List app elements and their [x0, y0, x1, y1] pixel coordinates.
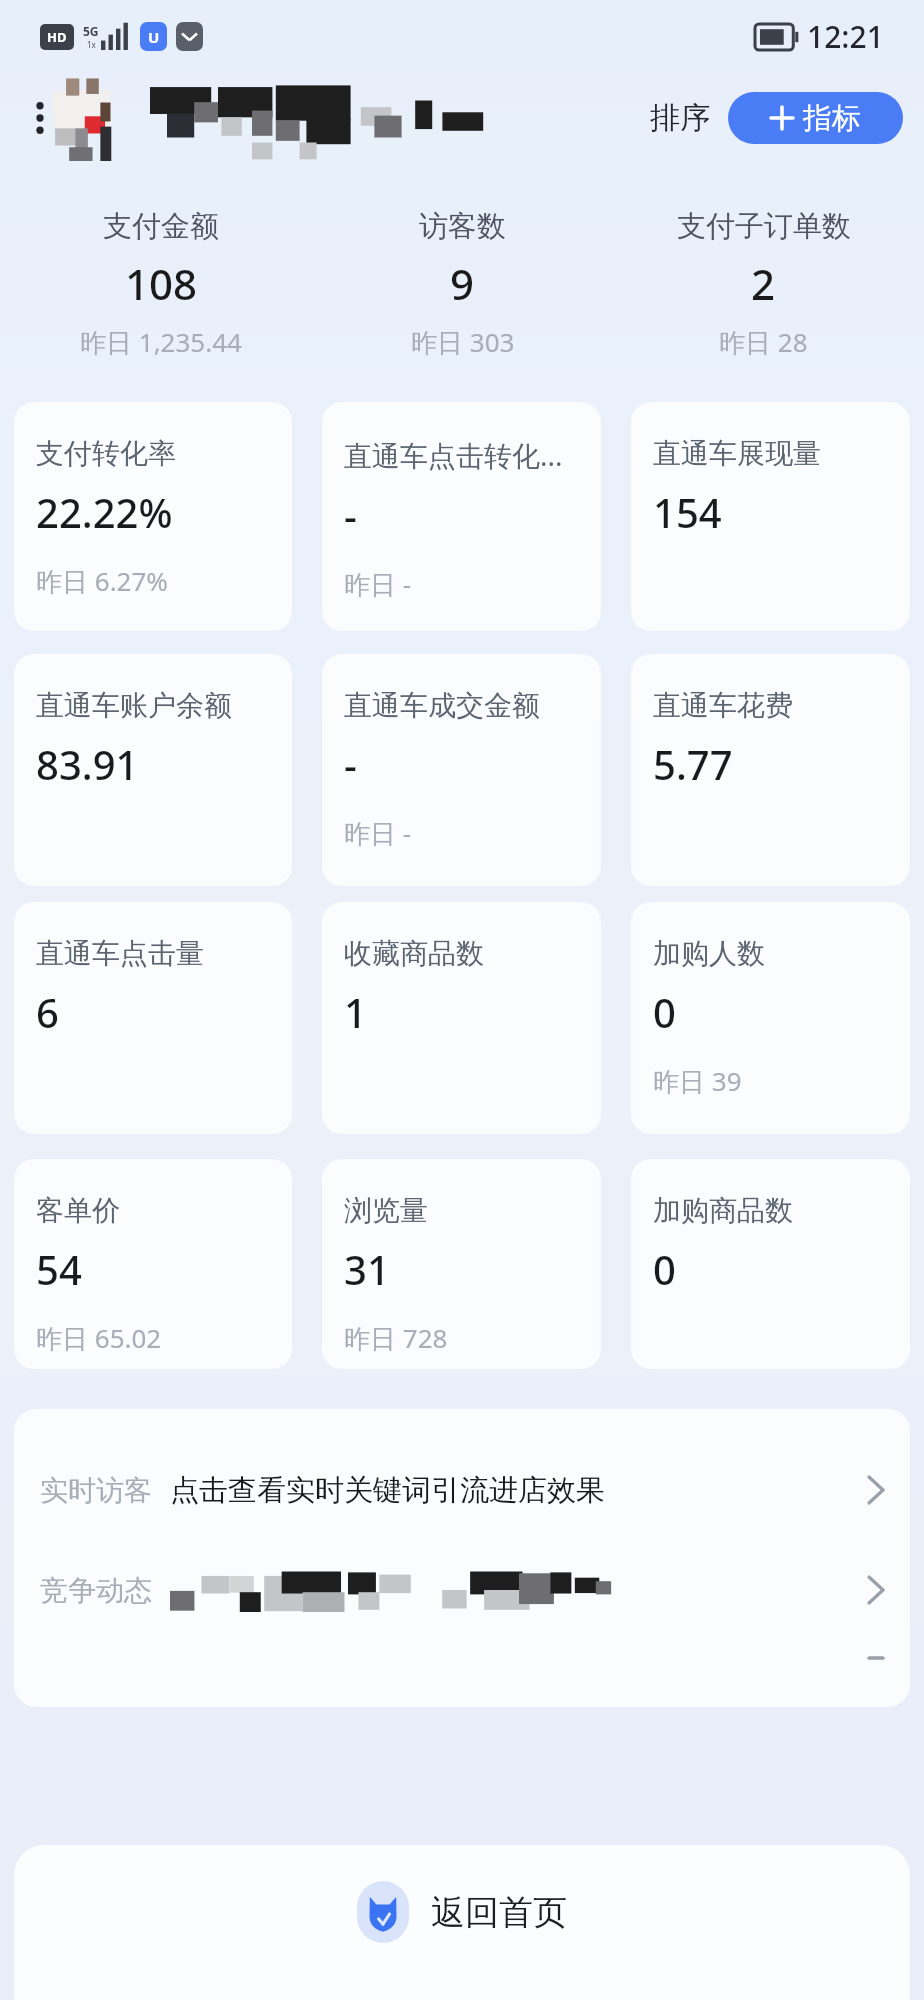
staticText: 直通车展现量 — [653, 436, 821, 471]
staticText: HD — [47, 28, 67, 46]
button[interactable]: 客单价 — [14, 1159, 292, 1369]
button[interactable]: 返回首页 — [347, 1875, 577, 1949]
staticText: 昨日 65.02 — [36, 1320, 162, 1356]
staticText: 9 — [450, 255, 475, 312]
staticText: 108 — [125, 255, 198, 312]
staticText: 加购商品数 — [653, 1193, 793, 1228]
button[interactable]: 加购人数 — [631, 902, 910, 1134]
button[interactable]: 直通车成交金额 — [322, 654, 601, 886]
staticText: 22.22% — [36, 485, 173, 539]
staticText: 154 — [653, 485, 722, 539]
staticText: 31 — [344, 1242, 390, 1296]
staticText: 加购人数 — [653, 936, 765, 971]
staticText: 直通车点击转化... — [344, 436, 563, 474]
staticText: 昨日 - — [344, 815, 412, 851]
button[interactable]: 直通车账户余额 — [14, 654, 292, 886]
staticText: 6 — [36, 985, 59, 1039]
button[interactable]: 指标 — [728, 92, 903, 144]
staticText: 1x — [87, 39, 96, 50]
staticText: 排序 — [650, 99, 710, 137]
staticText: - — [344, 737, 357, 791]
staticText: 昨日 303 — [411, 324, 515, 360]
button[interactable]: 收藏商品数 — [322, 902, 601, 1134]
staticText: 昨日 1,235.44 — [80, 324, 242, 360]
button[interactable]: More options — [22, 100, 58, 136]
staticText: 昨日 728 — [344, 1320, 448, 1356]
button[interactable]: 实时访客 — [14, 1457, 910, 1523]
staticText: U — [148, 27, 160, 47]
staticText: 昨日 39 — [653, 1063, 742, 1099]
staticText: 83.91 — [36, 737, 139, 791]
button[interactable]: 服务体验 — [14, 1657, 910, 1659]
button[interactable]: 直通车点击量 — [14, 902, 292, 1134]
staticText: 支付子订单数 — [677, 208, 851, 245]
button[interactable]: 访客数 — [312, 208, 613, 360]
button[interactable]: 支付金额 — [10, 208, 312, 360]
staticText: 支付金额 — [103, 208, 219, 245]
staticText: 客单价 — [36, 1193, 120, 1228]
staticText: 收藏商品数 — [344, 936, 484, 971]
staticText: 实时访客 — [40, 1473, 152, 1508]
staticText: 1 — [344, 985, 367, 1039]
button[interactable]: 支付转化率 — [14, 402, 292, 631]
staticText: 直通车成交金额 — [344, 688, 540, 723]
button[interactable]: 直通车花费 — [631, 654, 910, 886]
staticText: 12:21 — [807, 16, 884, 57]
button[interactable]: 排序 — [644, 93, 716, 143]
staticText: 5G — [83, 23, 99, 39]
staticText: 昨日 28 — [719, 324, 808, 360]
staticText: 54 — [36, 1242, 82, 1296]
staticText: 竞争动态 — [40, 1573, 152, 1608]
staticText: 0 — [653, 985, 676, 1039]
staticText: 5.77 — [653, 737, 733, 791]
staticText: 指标 — [803, 100, 861, 137]
button[interactable]: 加购商品数 — [631, 1159, 910, 1369]
button[interactable]: 竞争动态 — [14, 1557, 910, 1623]
staticText: 返回首页 — [431, 1891, 567, 1934]
staticText: 点击查看实时关键词引流进店效果 — [170, 1472, 605, 1509]
staticText: 0 — [653, 1242, 676, 1296]
staticText: 直通车花费 — [653, 688, 793, 723]
staticText: 昨日 6.27% — [36, 563, 168, 599]
staticText: 访客数 — [419, 208, 506, 245]
button[interactable]: 支付子订单数 — [613, 208, 914, 360]
staticText: 直通车账户余额 — [36, 688, 232, 723]
staticText: - — [344, 488, 357, 542]
button[interactable]: 浏览量 — [322, 1159, 601, 1369]
staticText: 2 — [751, 255, 776, 312]
staticText: 支付转化率 — [36, 436, 176, 471]
staticText: 直通车点击量 — [36, 936, 204, 971]
staticText: 昨日 - — [344, 566, 412, 602]
button[interactable]: 直通车点击转化... — [322, 402, 601, 631]
staticText: 浏览量 — [344, 1193, 428, 1228]
button[interactable]: 直通车展现量 — [631, 402, 910, 631]
